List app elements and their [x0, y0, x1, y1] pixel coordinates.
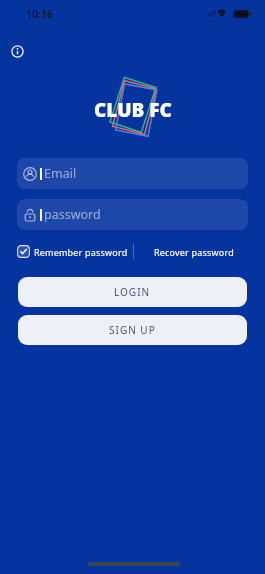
- staticText: Recover password: [154, 246, 234, 258]
- button[interactable]: Email: [17, 158, 248, 189]
- button[interactable]: SIGN UP: [18, 315, 247, 345]
- button[interactable]: [8, 42, 26, 60]
- staticText: Remember password: [34, 246, 128, 258]
- staticText: password: [44, 206, 101, 223]
- staticText: CLUB FC: [94, 97, 172, 123]
- button[interactable]: Recover password: [140, 243, 248, 260]
- staticText: SIGN UP: [109, 323, 156, 337]
- staticText: Email: [44, 165, 77, 182]
- button[interactable]: LOGIN: [18, 277, 247, 307]
- button[interactable]: password: [17, 199, 248, 230]
- button[interactable]: Remember password: [17, 243, 128, 260]
- staticText: LOGIN: [114, 285, 151, 299]
- staticText: 10:16: [26, 7, 53, 21]
